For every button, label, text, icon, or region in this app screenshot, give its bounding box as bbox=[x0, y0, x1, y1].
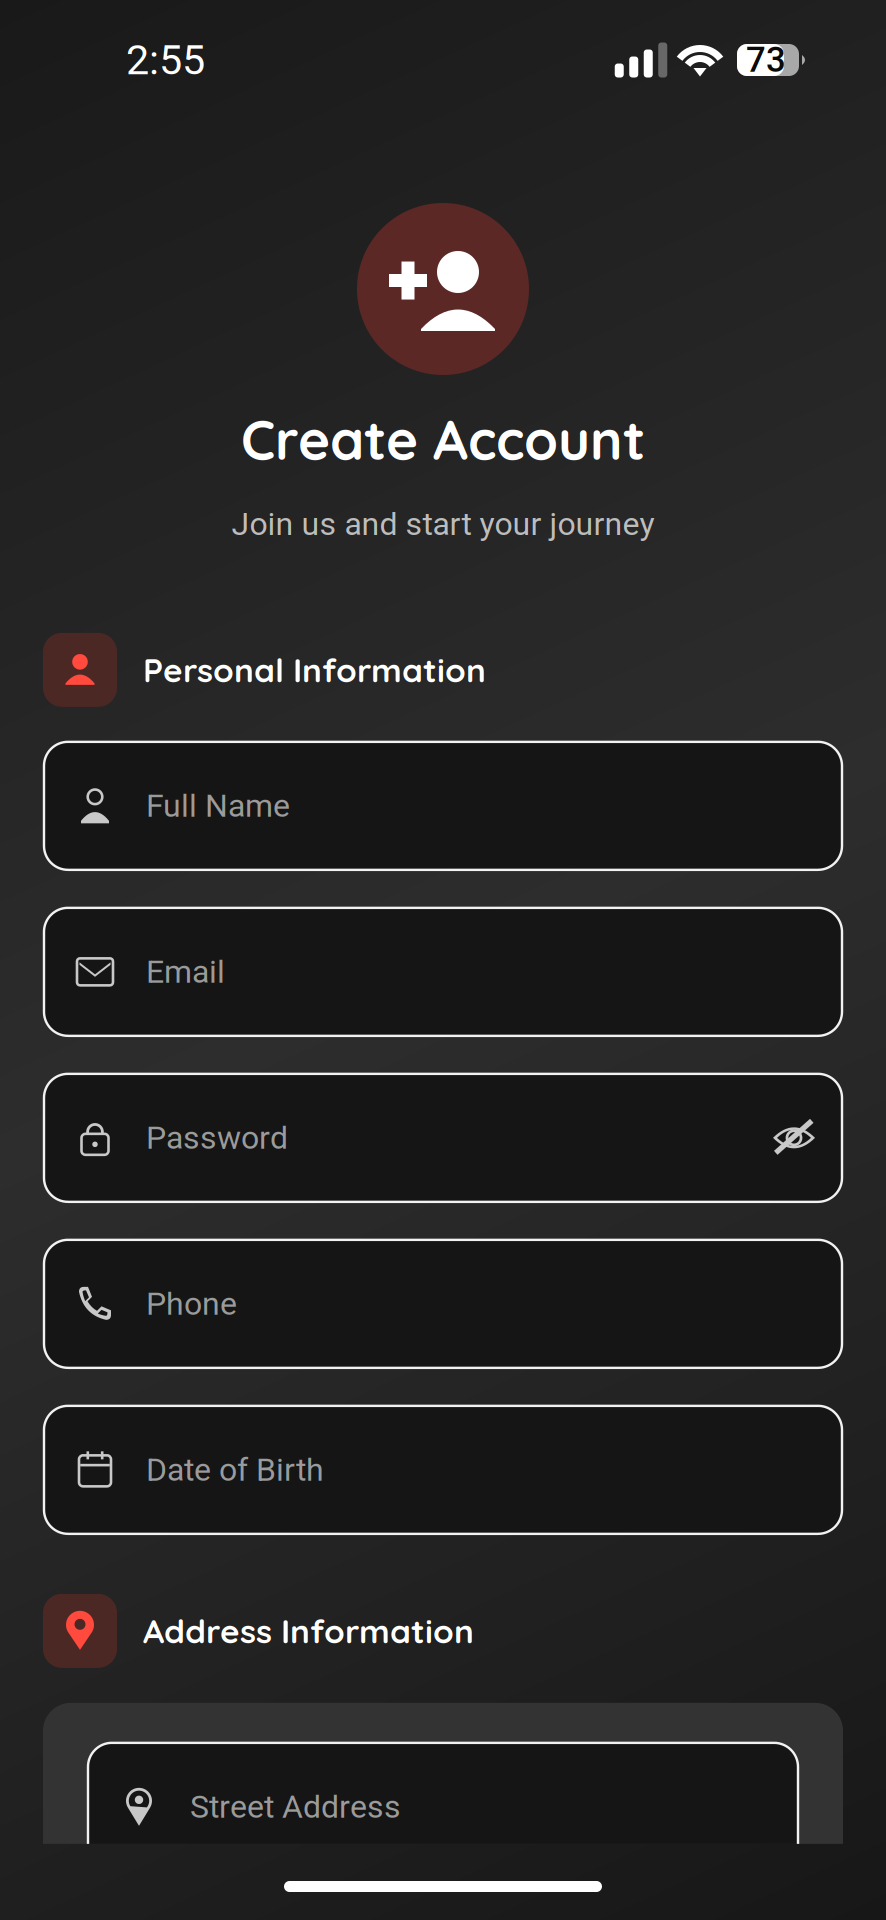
button[interactable]: Date of Birth bbox=[44, 1406, 842, 1534]
staticText: Join us and start your journey bbox=[231, 505, 654, 543]
staticText: Email bbox=[146, 953, 225, 991]
staticText: Date of Birth bbox=[146, 1451, 324, 1489]
staticText: Street Address bbox=[190, 1788, 401, 1826]
button[interactable]: Password bbox=[44, 1074, 842, 1202]
staticText: Personal Information bbox=[143, 649, 486, 691]
button[interactable]: Street Address bbox=[88, 1743, 798, 1871]
staticText: Create Account bbox=[241, 405, 645, 473]
staticText: Full Name bbox=[146, 787, 290, 825]
staticText: 2:55 bbox=[126, 36, 205, 84]
staticText: Password bbox=[146, 1119, 288, 1157]
button[interactable]: Full Name bbox=[44, 742, 842, 870]
button[interactable]: Phone bbox=[44, 1240, 842, 1368]
staticText: Address Information bbox=[143, 1610, 474, 1652]
button[interactable]: Email bbox=[44, 908, 842, 1036]
staticText: Phone bbox=[146, 1285, 237, 1323]
staticText: 73 bbox=[746, 40, 786, 80]
